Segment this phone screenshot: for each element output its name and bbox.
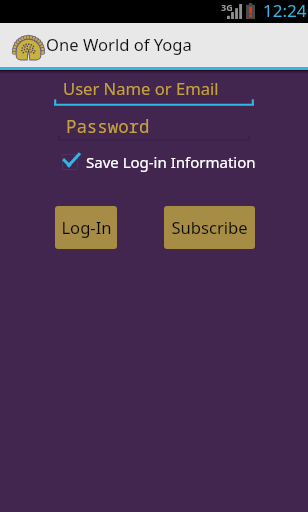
staticText: Log-In [61, 216, 112, 239]
button[interactable]: Save Log-in Information [62, 150, 256, 174]
staticText: Password [66, 114, 150, 138]
button[interactable]: User Name or Email [54, 77, 254, 106]
staticText: Subscribe [171, 216, 248, 239]
button[interactable]: Log-In [55, 206, 117, 249]
button[interactable]: Password [58, 114, 250, 141]
staticText: User Name or Email [63, 77, 219, 100]
staticText: Save Log-in Information [86, 152, 256, 172]
staticText: 3G [221, 1, 233, 13]
button[interactable]: One World of Yoga [0, 23, 308, 67]
button[interactable]: Subscribe [164, 206, 255, 249]
staticText: 12:24 [263, 0, 307, 22]
staticText: One World of Yoga [46, 33, 192, 56]
